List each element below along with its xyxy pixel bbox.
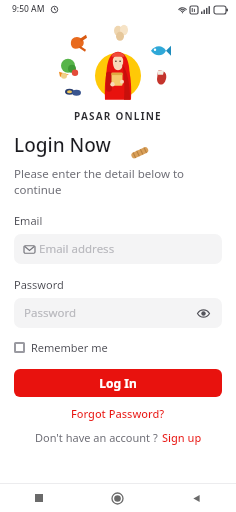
button[interactable]: Password	[14, 298, 222, 328]
staticText: Password	[24, 305, 194, 321]
button[interactable]: Recent apps	[0, 484, 78, 512]
staticText: Email address	[39, 241, 212, 257]
button[interactable]: Log In	[14, 369, 222, 397]
staticText: Log In	[99, 375, 137, 391]
staticText: Email	[14, 213, 43, 228]
staticText: Sign up	[162, 430, 202, 445]
staticText: PASAR ONLINE	[74, 109, 162, 123]
staticText: Login Now	[14, 132, 111, 158]
staticText: Forgot Password?	[71, 406, 165, 421]
staticText: 9:50 AM	[12, 3, 45, 15]
staticText: Password	[14, 277, 64, 292]
button[interactable]: Back	[157, 484, 236, 512]
button[interactable]: Email address	[14, 234, 222, 264]
staticText: Remember me	[31, 340, 108, 355]
staticText: Please enter the detail below to continu…	[14, 166, 222, 198]
button[interactable]: Sign up	[158, 430, 202, 445]
button[interactable]: Remember me	[14, 338, 108, 357]
button[interactable]: Show password	[194, 304, 212, 322]
button[interactable]: Forgot Password?	[14, 406, 222, 421]
button[interactable]: Home	[78, 484, 157, 512]
staticText: Don't have an account ?	[35, 430, 158, 445]
